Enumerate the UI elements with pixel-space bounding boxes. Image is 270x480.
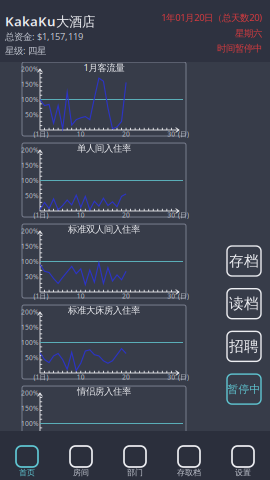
staticText: 1年01月20日（总天数20) — [161, 11, 262, 24]
staticText: 读档 — [229, 295, 259, 313]
staticText: 标准大床房入住率 — [68, 305, 140, 316]
staticText: 150% — [21, 161, 39, 170]
staticText: 200% — [21, 146, 39, 154]
staticText: (1日) — [33, 373, 48, 381]
staticText: 时间暂停中 — [217, 43, 262, 54]
staticText: 30 — [167, 292, 175, 300]
staticText: 150% — [21, 323, 39, 332]
staticText: 存档 — [229, 252, 259, 270]
staticText: 房间 — [73, 468, 89, 477]
staticText: 100% — [21, 338, 39, 347]
staticText: 20 — [122, 211, 130, 219]
staticText: 200% — [21, 308, 39, 316]
staticText: 150% — [21, 404, 39, 413]
staticText: 10 — [77, 130, 85, 138]
button[interactable]: 招聘 — [227, 331, 261, 361]
staticText: KakaKu大酒店 — [5, 12, 95, 30]
staticText: 200% — [21, 227, 39, 235]
staticText: (1日) — [33, 454, 48, 462]
staticText: (1日) — [33, 292, 48, 300]
staticText: 部门 — [127, 468, 143, 477]
staticText: 20 — [122, 130, 130, 138]
staticText: 20 — [122, 292, 130, 300]
staticText: 20 — [122, 373, 130, 381]
staticText: 招聘 — [229, 337, 259, 355]
staticText: (日) — [178, 130, 189, 138]
staticText: 100% — [21, 419, 39, 428]
staticText: 星级: 四星 — [5, 44, 46, 57]
staticText: 存取档 — [177, 468, 201, 477]
staticText: (1日) — [33, 211, 48, 219]
staticText: 50% — [25, 110, 39, 119]
staticText: 50% — [25, 191, 39, 200]
staticText: 10 — [77, 373, 85, 381]
staticText: 情侣房入住率 — [77, 386, 131, 397]
staticText: 设置 — [235, 468, 251, 477]
button[interactable]: 设置 — [216, 429, 270, 480]
staticText: 100% — [21, 176, 39, 185]
staticText: 暂停中 — [227, 382, 260, 396]
staticText: 30 — [167, 130, 175, 138]
staticText: (日) — [178, 292, 189, 300]
staticText: 200% — [21, 65, 39, 73]
staticText: 100% — [21, 95, 39, 104]
staticText: 150% — [21, 242, 39, 251]
staticText: 150% — [21, 80, 39, 89]
staticText: 首页 — [19, 468, 35, 477]
staticText: 50% — [25, 353, 39, 362]
button[interactable]: 暂停中 — [227, 374, 261, 404]
staticText: 20 — [122, 454, 130, 462]
button[interactable]: 房间 — [54, 429, 108, 480]
staticText: (日) — [178, 454, 189, 462]
staticText: 标准双人间入住率 — [68, 224, 140, 235]
staticText: 100% — [21, 257, 39, 266]
button[interactable]: 部门 — [108, 429, 162, 480]
staticText: 50% — [25, 272, 39, 281]
staticText: 200% — [21, 389, 39, 397]
button[interactable]: 首页 — [0, 429, 54, 480]
staticText: 10 — [77, 292, 85, 300]
staticText: 总资金: $1,157,119 — [5, 30, 83, 43]
staticText: 10 — [77, 211, 85, 219]
staticText: (日) — [178, 211, 189, 219]
staticText: 30 — [167, 373, 175, 381]
staticText: 1月客流量 — [83, 61, 124, 74]
button[interactable]: 存档 — [227, 246, 261, 276]
staticText: 单人间入住率 — [77, 143, 131, 154]
button[interactable]: 读档 — [227, 289, 261, 319]
staticText: (日) — [178, 373, 189, 381]
button[interactable]: 存取档 — [162, 429, 216, 480]
staticText: (1日) — [33, 130, 48, 138]
staticText: 星期六 — [235, 28, 262, 39]
staticText: 30 — [167, 211, 175, 219]
